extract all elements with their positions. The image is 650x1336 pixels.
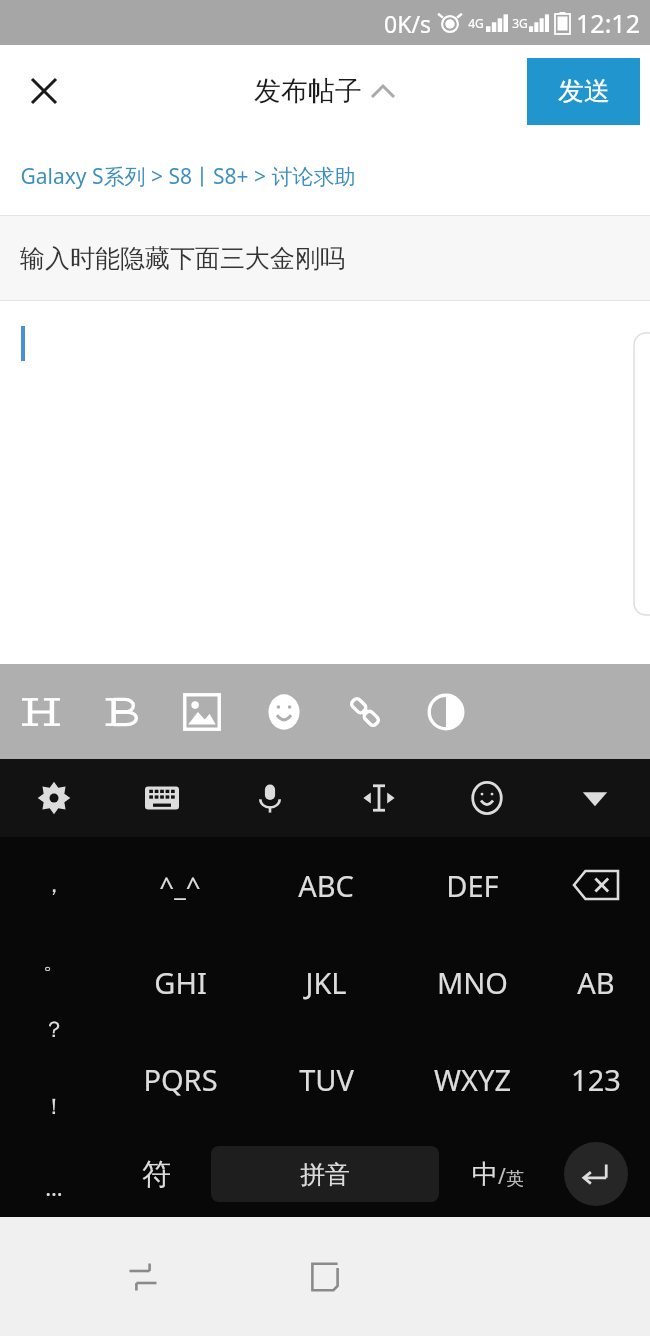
staticText: ！ <box>43 1093 65 1121</box>
button[interactable]: Insert image <box>172 682 232 742</box>
button[interactable]: Galaxy S系列 > S8丨S8+ > 讨论求助 <box>0 137 650 215</box>
button[interactable]: 发送 <box>527 58 640 125</box>
staticText: / <box>498 1162 506 1191</box>
staticText: 发送 <box>558 75 610 108</box>
staticText: 符 <box>142 1156 171 1193</box>
button[interactable]: Close <box>12 59 76 123</box>
staticText: … <box>45 1172 63 1202</box>
staticText: 拼音 <box>300 1159 350 1190</box>
staticText: TUV <box>299 1060 354 1099</box>
staticText: WXYZ <box>434 1060 511 1099</box>
button[interactable]: … <box>18 1157 90 1217</box>
staticText: GHI <box>154 963 207 1002</box>
button[interactable]: WXYZ <box>408 1046 536 1112</box>
button[interactable]: ， <box>18 855 90 915</box>
staticText: 中 <box>472 1158 498 1191</box>
button[interactable]: JKL <box>262 949 390 1015</box>
button[interactable]: TUV <box>262 1046 390 1112</box>
button[interactable]: Recents <box>283 1235 367 1319</box>
button[interactable]: ？ <box>18 1000 90 1060</box>
staticText: ？ <box>43 1016 65 1044</box>
staticText: 123 <box>571 1060 621 1099</box>
staticText: 12:12 <box>576 6 640 40</box>
button[interactable]: 发布帖子 <box>254 74 396 108</box>
staticText: DEF <box>446 866 499 905</box>
button[interactable]: Bold <box>92 682 152 742</box>
staticText: 英 <box>506 1168 524 1191</box>
button[interactable]: 拼音 <box>211 1146 439 1202</box>
button[interactable]: 输入时能隐藏下面三大金刚吗 <box>0 216 650 300</box>
button[interactable]: ^_^ <box>116 852 244 918</box>
button[interactable]: ！ <box>18 1077 90 1137</box>
staticText: 3G <box>512 15 528 31</box>
button[interactable]: 符 <box>92 1141 220 1207</box>
staticText: 4G <box>468 15 484 31</box>
button[interactable]: PQRS <box>116 1046 244 1112</box>
staticText: 0K/s <box>384 8 431 39</box>
button[interactable]: 中 <box>452 1143 544 1205</box>
button[interactable]: Insert link <box>335 682 395 742</box>
staticText: 输入时能隐藏下面三大金刚吗 <box>20 243 345 274</box>
button[interactable]: ABC <box>262 852 390 918</box>
button[interactable]: Contrast <box>416 682 476 742</box>
staticText: ABC <box>298 866 354 905</box>
button[interactable]: DEF <box>408 852 536 918</box>
staticText: Galaxy S系列 > S8丨S8+ > 讨论求助 <box>20 162 356 191</box>
staticText: 发布帖子 <box>254 74 362 108</box>
button[interactable]: Back <box>101 1235 185 1319</box>
button[interactable]: Emoji <box>254 682 314 742</box>
button[interactable]: GHI <box>116 949 244 1015</box>
staticText: PQRS <box>143 1060 218 1099</box>
button[interactable]: Settings <box>24 768 84 828</box>
button[interactable]: Heading <box>11 682 71 742</box>
button[interactable]: 。 <box>18 932 90 992</box>
staticText: MNO <box>437 963 508 1002</box>
button[interactable]: AB <box>532 949 650 1015</box>
button[interactable]: Emoji <box>457 768 517 828</box>
button[interactable]: Backspace <box>546 852 646 918</box>
button[interactable]: Hide keyboard <box>565 768 625 828</box>
staticText: AB <box>577 963 615 1002</box>
staticText: ， <box>43 871 65 899</box>
button[interactable]: Keyboard layout <box>132 768 192 828</box>
staticText: 。 <box>43 948 65 976</box>
button[interactable]: 123 <box>532 1046 650 1112</box>
button[interactable]: MNO <box>408 949 536 1015</box>
button[interactable]: Enter <box>564 1142 628 1206</box>
button[interactable]: Move cursor <box>349 768 409 828</box>
staticText: JKL <box>305 963 347 1002</box>
button[interactable]: Voice input <box>240 768 300 828</box>
staticText: ^_^ <box>159 868 201 903</box>
